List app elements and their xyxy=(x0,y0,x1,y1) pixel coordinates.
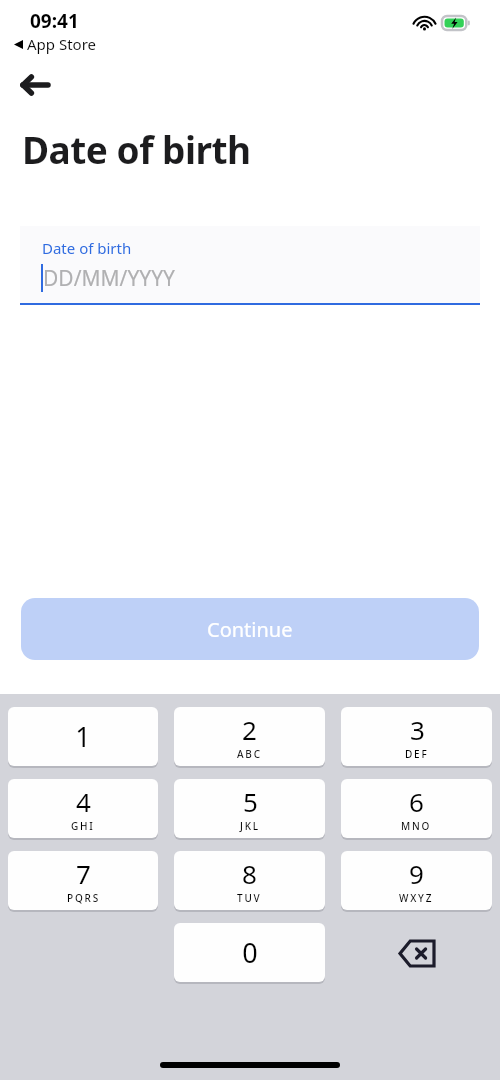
staticText: 8 xyxy=(242,856,257,891)
button[interactable]: Delete xyxy=(381,923,453,984)
staticText: 09:41 xyxy=(30,8,79,34)
staticText: PQRS xyxy=(67,891,100,905)
staticText: 7 xyxy=(76,856,91,891)
staticText: TUV xyxy=(237,891,262,905)
button[interactable]: 4 xyxy=(8,779,158,838)
button[interactable]: 8 xyxy=(174,851,325,910)
staticText: 4 xyxy=(76,784,91,819)
staticText: DD/MM/YYYY xyxy=(43,264,175,293)
staticText: 6 xyxy=(409,784,424,819)
button[interactable]: Back xyxy=(12,62,58,108)
button[interactable]: 1 xyxy=(8,707,158,766)
button[interactable]: 6 xyxy=(341,779,492,838)
button[interactable]: Continue xyxy=(21,598,479,660)
staticText: 0 xyxy=(242,934,258,971)
button[interactable]: 5 xyxy=(174,779,325,838)
staticText: JKL xyxy=(240,819,260,833)
staticText: App Store xyxy=(27,34,97,54)
button[interactable]: 2 xyxy=(174,707,325,766)
button[interactable]: Date of birth xyxy=(20,226,480,305)
staticText: WXYZ xyxy=(399,891,434,905)
staticText: 9 xyxy=(409,856,424,891)
staticText: 1 xyxy=(75,718,91,755)
button[interactable]: 7 xyxy=(8,851,158,910)
button[interactable]: 0 xyxy=(174,923,325,982)
staticText: Continue xyxy=(207,616,293,643)
staticText: DEF xyxy=(405,747,429,761)
staticText: MNO xyxy=(401,819,432,833)
staticText: 5 xyxy=(243,784,258,819)
staticText: Date of birth xyxy=(22,124,251,174)
staticText: Date of birth xyxy=(42,238,132,258)
button[interactable]: 9 xyxy=(341,851,492,910)
staticText: GHI xyxy=(71,819,95,833)
button[interactable]: 3 xyxy=(341,707,492,766)
staticText: 2 xyxy=(242,712,257,747)
staticText: ABC xyxy=(237,747,262,761)
staticText: 3 xyxy=(410,712,425,747)
